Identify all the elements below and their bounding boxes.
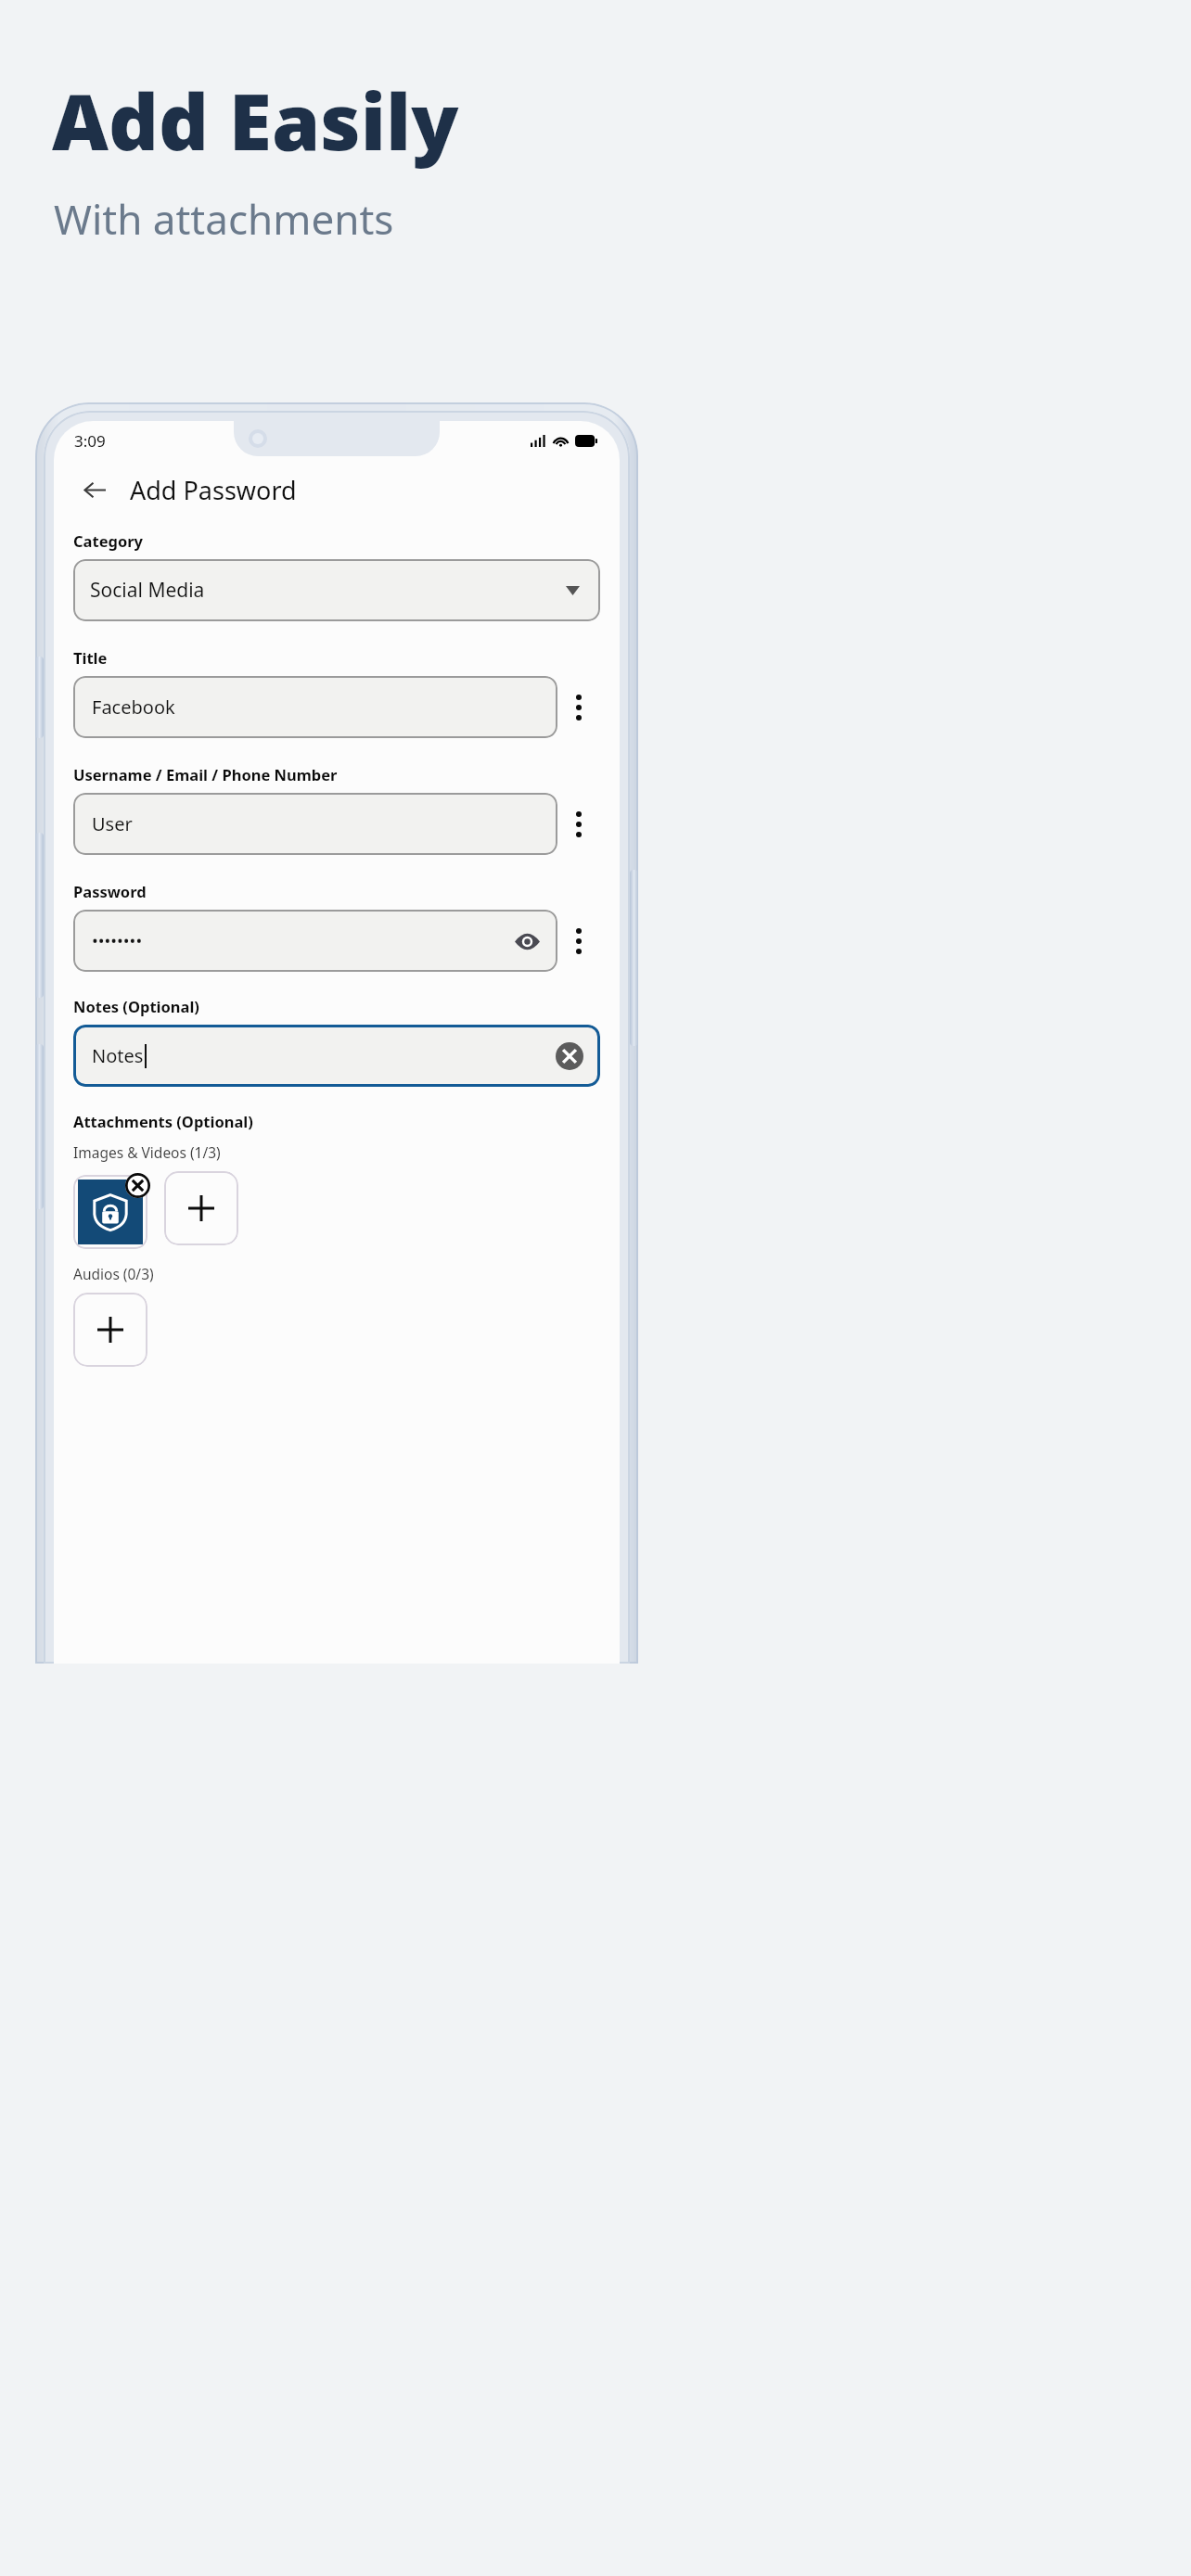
button[interactable]: More options [557,910,600,972]
button[interactable]: More options [557,676,600,738]
staticText: •••••••• [92,929,143,952]
button[interactable]: Show password [509,924,544,959]
staticText: Audios (0/3) [73,1264,154,1283]
button[interactable] [73,1175,147,1249]
button[interactable]: Remove attachment [123,1171,151,1199]
staticText: Title [73,647,108,668]
button[interactable]: Add attachment [73,1293,147,1367]
staticText: Facebook [92,695,175,720]
staticText: Username / Email / Phone Number [73,764,338,784]
staticText: Attachments (Optional) [73,1111,253,1131]
staticText: Password [73,881,147,901]
staticText: Social Media [90,577,205,604]
button[interactable]: User [73,793,557,855]
staticText: Add Password [130,473,297,507]
button[interactable]: Facebook [73,676,557,738]
staticText: 3:09 [74,430,106,452]
button[interactable]: Notes [73,1025,600,1087]
button[interactable]: •••••••• [73,910,557,972]
staticText: Notes (Optional) [73,996,199,1016]
button[interactable]: Back [74,469,115,510]
staticText: Category [73,530,144,551]
button[interactable]: More options [557,793,600,855]
button[interactable]: Add attachment [164,1171,238,1245]
staticText: Notes [92,1043,144,1068]
button[interactable]: Clear notes [556,1042,583,1070]
staticText: User [92,811,133,836]
button[interactable]: Social Media [73,559,600,621]
staticText: Images & Videos (1/3) [73,1142,221,1162]
staticText: With attachments [54,191,394,247]
staticText: Add Easily [52,67,459,172]
